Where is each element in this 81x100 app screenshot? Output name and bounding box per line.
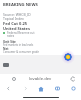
button[interactable]: Back [0,83,17,94]
staticText: Topical Index [3,16,24,21]
staticText: Federal Reserve cut [7,31,35,35]
button[interactable]: Home [33,83,49,94]
button[interactable]: lovable.dev [0,74,81,83]
staticText: Fed markets in low levels [3,43,34,47]
staticText: lovable.dev [29,76,52,82]
button[interactable]: Menu [65,83,81,94]
staticText: Unit Site [3,40,16,44]
staticText: Fed Cut 0.25 [3,21,28,26]
staticText: United States [3,26,30,31]
button[interactable]: Site information [12,77,16,81]
button[interactable]: Reload [71,77,75,81]
button[interactable]: Forward [17,83,33,94]
button[interactable]: Assistant [61,50,75,64]
staticText: Net [3,47,9,51]
button[interactable]: Tabs [49,83,65,94]
staticText: Source: WHCB_ID [3,12,31,17]
staticText: BREAKING NEWS [3,2,38,8]
staticText: rates [7,34,15,38]
staticText: Consumer & consumer grade [3,50,39,54]
